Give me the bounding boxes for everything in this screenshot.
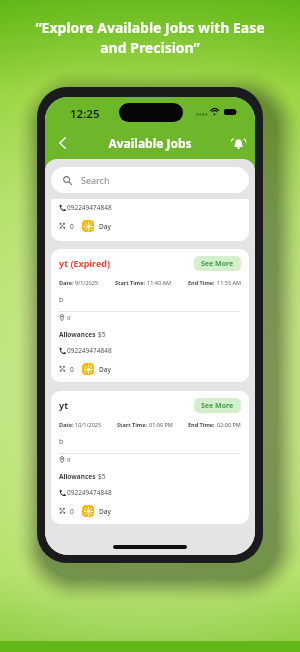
staticText: See More [201,259,234,269]
staticText: Start Time: [117,421,149,428]
button[interactable]: Search [51,167,249,193]
staticText: Start Time: [115,279,147,286]
button[interactable]: Notifications [227,132,249,154]
button[interactable]: See More [194,256,241,271]
staticText: 0 [70,222,74,231]
staticText: 092249474848 [67,346,112,355]
staticText: 092249474848 [67,203,112,212]
button[interactable]: 092249474848 [51,199,249,241]
staticText: End Time: [188,421,217,428]
staticText: 01:00 PM [149,421,173,428]
staticText: Day [99,222,111,231]
staticText: 0 [70,365,74,374]
staticText: See More [201,401,234,411]
staticText: 11:40 AM [147,279,171,286]
button[interactable]: Back [51,132,73,154]
staticText: “Explore Available Jobs with Ease and Pr… [22,18,278,57]
staticText: 10/1/2025 [75,421,102,428]
staticText: Allowances [59,472,98,481]
staticText: Available Jobs [73,135,227,151]
staticText: End Time: [188,279,217,286]
staticText: Day [99,365,111,374]
staticText: 9/1/2025 [75,279,98,286]
staticText: b [59,295,63,304]
staticText: 0 [70,507,74,516]
staticText: 12:25 [70,106,100,119]
staticText: Date: [59,421,75,428]
staticText: 02:00 PM [217,421,241,428]
staticText: Allowances [59,330,98,339]
staticText: Search [81,174,110,186]
staticText: yt (Expired) [59,257,111,269]
staticText: $5 [98,472,106,481]
staticText: Date: [59,279,75,286]
staticText: b [59,437,63,446]
button[interactable]: yt (Expired) [51,249,249,382]
staticText: $5 [98,330,106,339]
staticText: 092249474848 [67,488,112,497]
staticText: Day [99,507,111,516]
button[interactable]: yt [51,391,249,524]
button[interactable]: See More [194,398,241,413]
staticText: 11:55 AM [217,279,241,286]
staticText: yt [59,399,69,411]
staticText: g [67,313,71,321]
staticText: g [67,455,71,463]
